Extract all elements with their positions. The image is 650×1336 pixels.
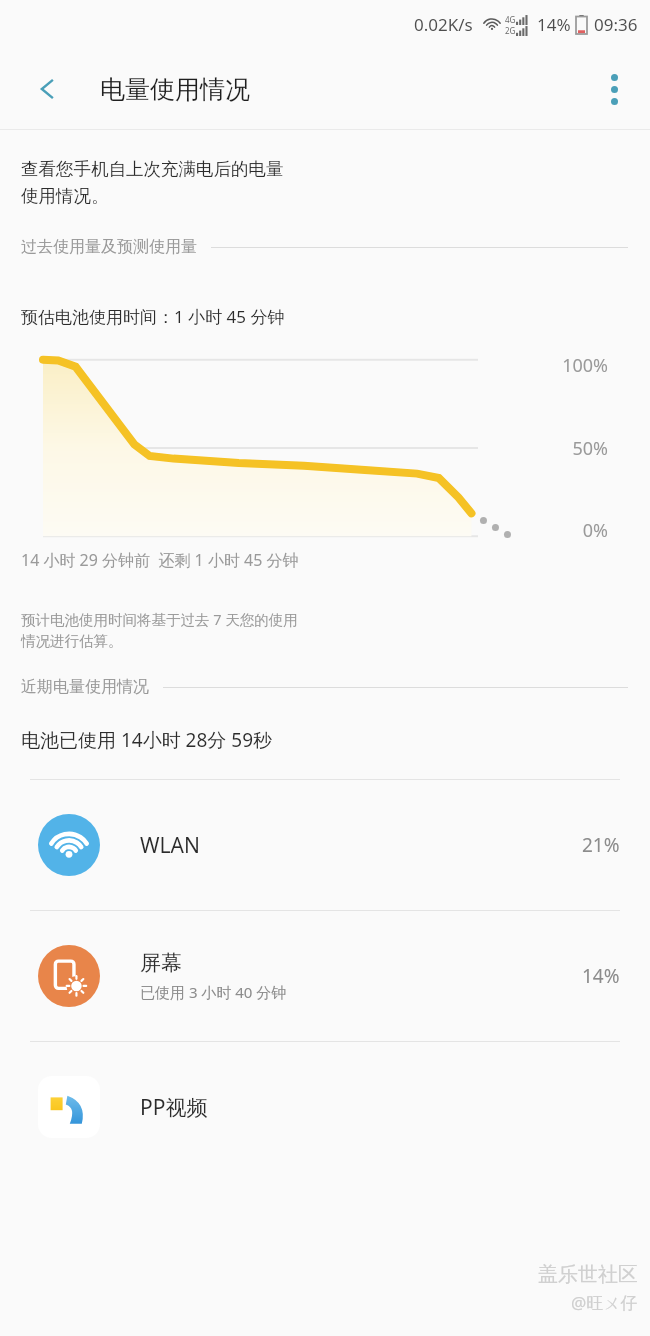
staticText: 查看您手机自上次充满电后的电量 使用情况。 bbox=[21, 158, 284, 207]
staticText: 14 小时 29 分钟前 还剩 1 小时 45 分钟 bbox=[21, 549, 299, 571]
button[interactable]: 屏幕 bbox=[0, 911, 650, 1041]
staticText: 近期电量使用情况 bbox=[21, 677, 149, 697]
staticText: 2G bbox=[505, 25, 516, 36]
staticText: PP视频 bbox=[140, 1093, 208, 1122]
button[interactable]: More options bbox=[590, 65, 638, 113]
staticText: 4G bbox=[505, 14, 516, 25]
staticText: 14% bbox=[582, 963, 620, 989]
staticText: 09:36 bbox=[594, 13, 638, 36]
staticText: 预计电池使用时间将基于过去 7 天您的使用 情况进行估算。 bbox=[21, 609, 298, 651]
staticText: 已使用 3 小时 40 分钟 bbox=[140, 982, 287, 1002]
button[interactable]: WLAN bbox=[0, 780, 650, 910]
staticText: 电池已使用 14小时 28分 59秒 bbox=[21, 727, 273, 753]
staticText: 50% bbox=[572, 436, 608, 461]
staticText: 0% bbox=[582, 518, 608, 543]
staticText: 屏幕 bbox=[140, 950, 182, 976]
staticText: 0.02K/s bbox=[414, 13, 473, 36]
staticText: 预估电池使用时间：1 小时 45 分钟 bbox=[21, 305, 285, 328]
staticText: @旺ㄨ仔 bbox=[571, 1291, 638, 1314]
button[interactable]: Back bbox=[26, 67, 70, 111]
staticText: 盖乐世社区 bbox=[538, 1262, 638, 1287]
staticText: 14% bbox=[537, 13, 571, 36]
staticText: 100% bbox=[562, 353, 608, 378]
staticText: 21% bbox=[582, 832, 620, 858]
button[interactable]: PP视频 bbox=[0, 1042, 650, 1172]
staticText: WLAN bbox=[140, 831, 200, 860]
staticText: 电量使用情况 bbox=[100, 74, 250, 105]
staticText: 过去使用量及预测使用量 bbox=[21, 237, 197, 257]
